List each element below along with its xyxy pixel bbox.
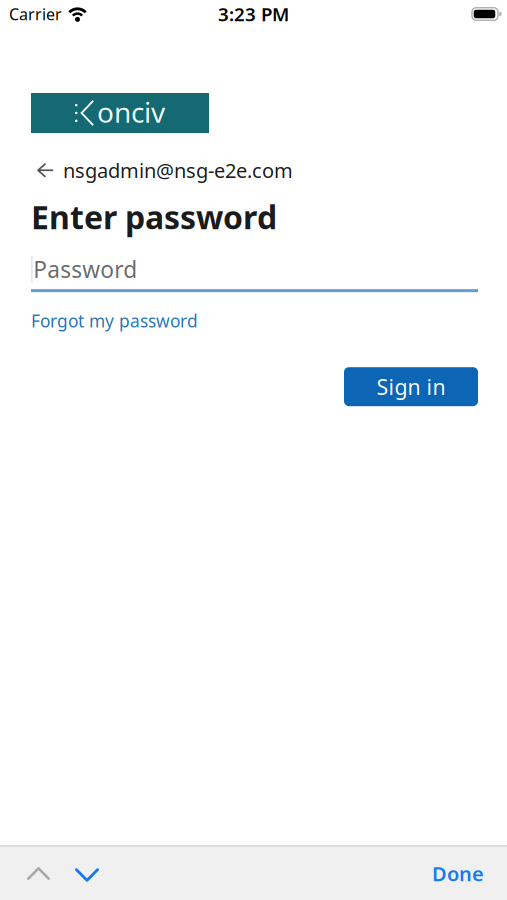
staticText: Password xyxy=(33,254,137,284)
staticText: 3:23 PM xyxy=(218,2,289,26)
button[interactable]: Forgot my password xyxy=(31,309,198,332)
button[interactable]: Password xyxy=(31,254,478,292)
button[interactable]: Previous field xyxy=(27,857,50,890)
staticText: onciv xyxy=(97,93,165,131)
button[interactable]: Sign in xyxy=(344,367,478,406)
staticText: Carrier xyxy=(9,3,62,25)
button[interactable]: Back xyxy=(31,157,293,184)
staticText: nsgadmin@nsg-e2e.com xyxy=(63,157,293,184)
button[interactable]: Done xyxy=(432,860,484,887)
staticText: Done xyxy=(432,860,484,887)
button[interactable]: Next field xyxy=(75,857,99,890)
staticText: Sign in xyxy=(376,372,445,401)
staticText: Forgot my password xyxy=(31,309,198,332)
staticText: Enter password xyxy=(31,196,277,238)
